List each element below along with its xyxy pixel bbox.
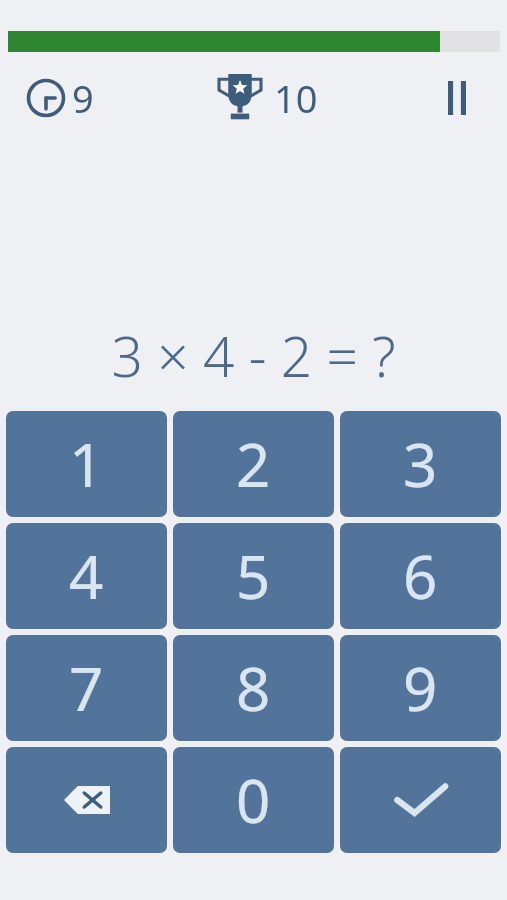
button[interactable]: Score bbox=[212, 72, 318, 124]
button[interactable]: 3 bbox=[340, 411, 501, 517]
button[interactable]: 7 bbox=[6, 635, 167, 741]
staticText: 1 bbox=[69, 423, 104, 505]
staticText: 10 bbox=[274, 72, 318, 124]
button[interactable]: Submit answer bbox=[340, 747, 501, 853]
button[interactable]: 1 bbox=[6, 411, 167, 517]
button[interactable]: 2 bbox=[173, 411, 334, 517]
staticText: 9 bbox=[72, 72, 94, 124]
button[interactable]: 6 bbox=[340, 523, 501, 629]
staticText: 0 bbox=[236, 759, 271, 841]
button[interactable]: Backspace bbox=[6, 747, 167, 853]
staticText: 4 bbox=[69, 535, 104, 617]
other: Score bbox=[212, 72, 268, 124]
staticText: 3 bbox=[403, 423, 438, 505]
staticText: 7 bbox=[69, 647, 104, 729]
button[interactable]: 0 bbox=[173, 747, 334, 853]
staticText: 8 bbox=[236, 647, 271, 729]
other: Time remaining bbox=[26, 78, 66, 118]
staticText: 5 bbox=[236, 535, 271, 617]
staticText: 3 × 4 - 2 = ? bbox=[0, 318, 507, 393]
button[interactable]: 5 bbox=[173, 523, 334, 629]
button[interactable]: 4 bbox=[6, 523, 167, 629]
button[interactable]: Time remaining bbox=[26, 72, 94, 124]
button[interactable]: 8 bbox=[173, 635, 334, 741]
button[interactable]: Pause bbox=[435, 76, 479, 120]
button[interactable]: 9 bbox=[340, 635, 501, 741]
staticText: 9 bbox=[403, 647, 438, 729]
staticText: 6 bbox=[403, 535, 438, 617]
staticText: 2 bbox=[236, 423, 271, 505]
